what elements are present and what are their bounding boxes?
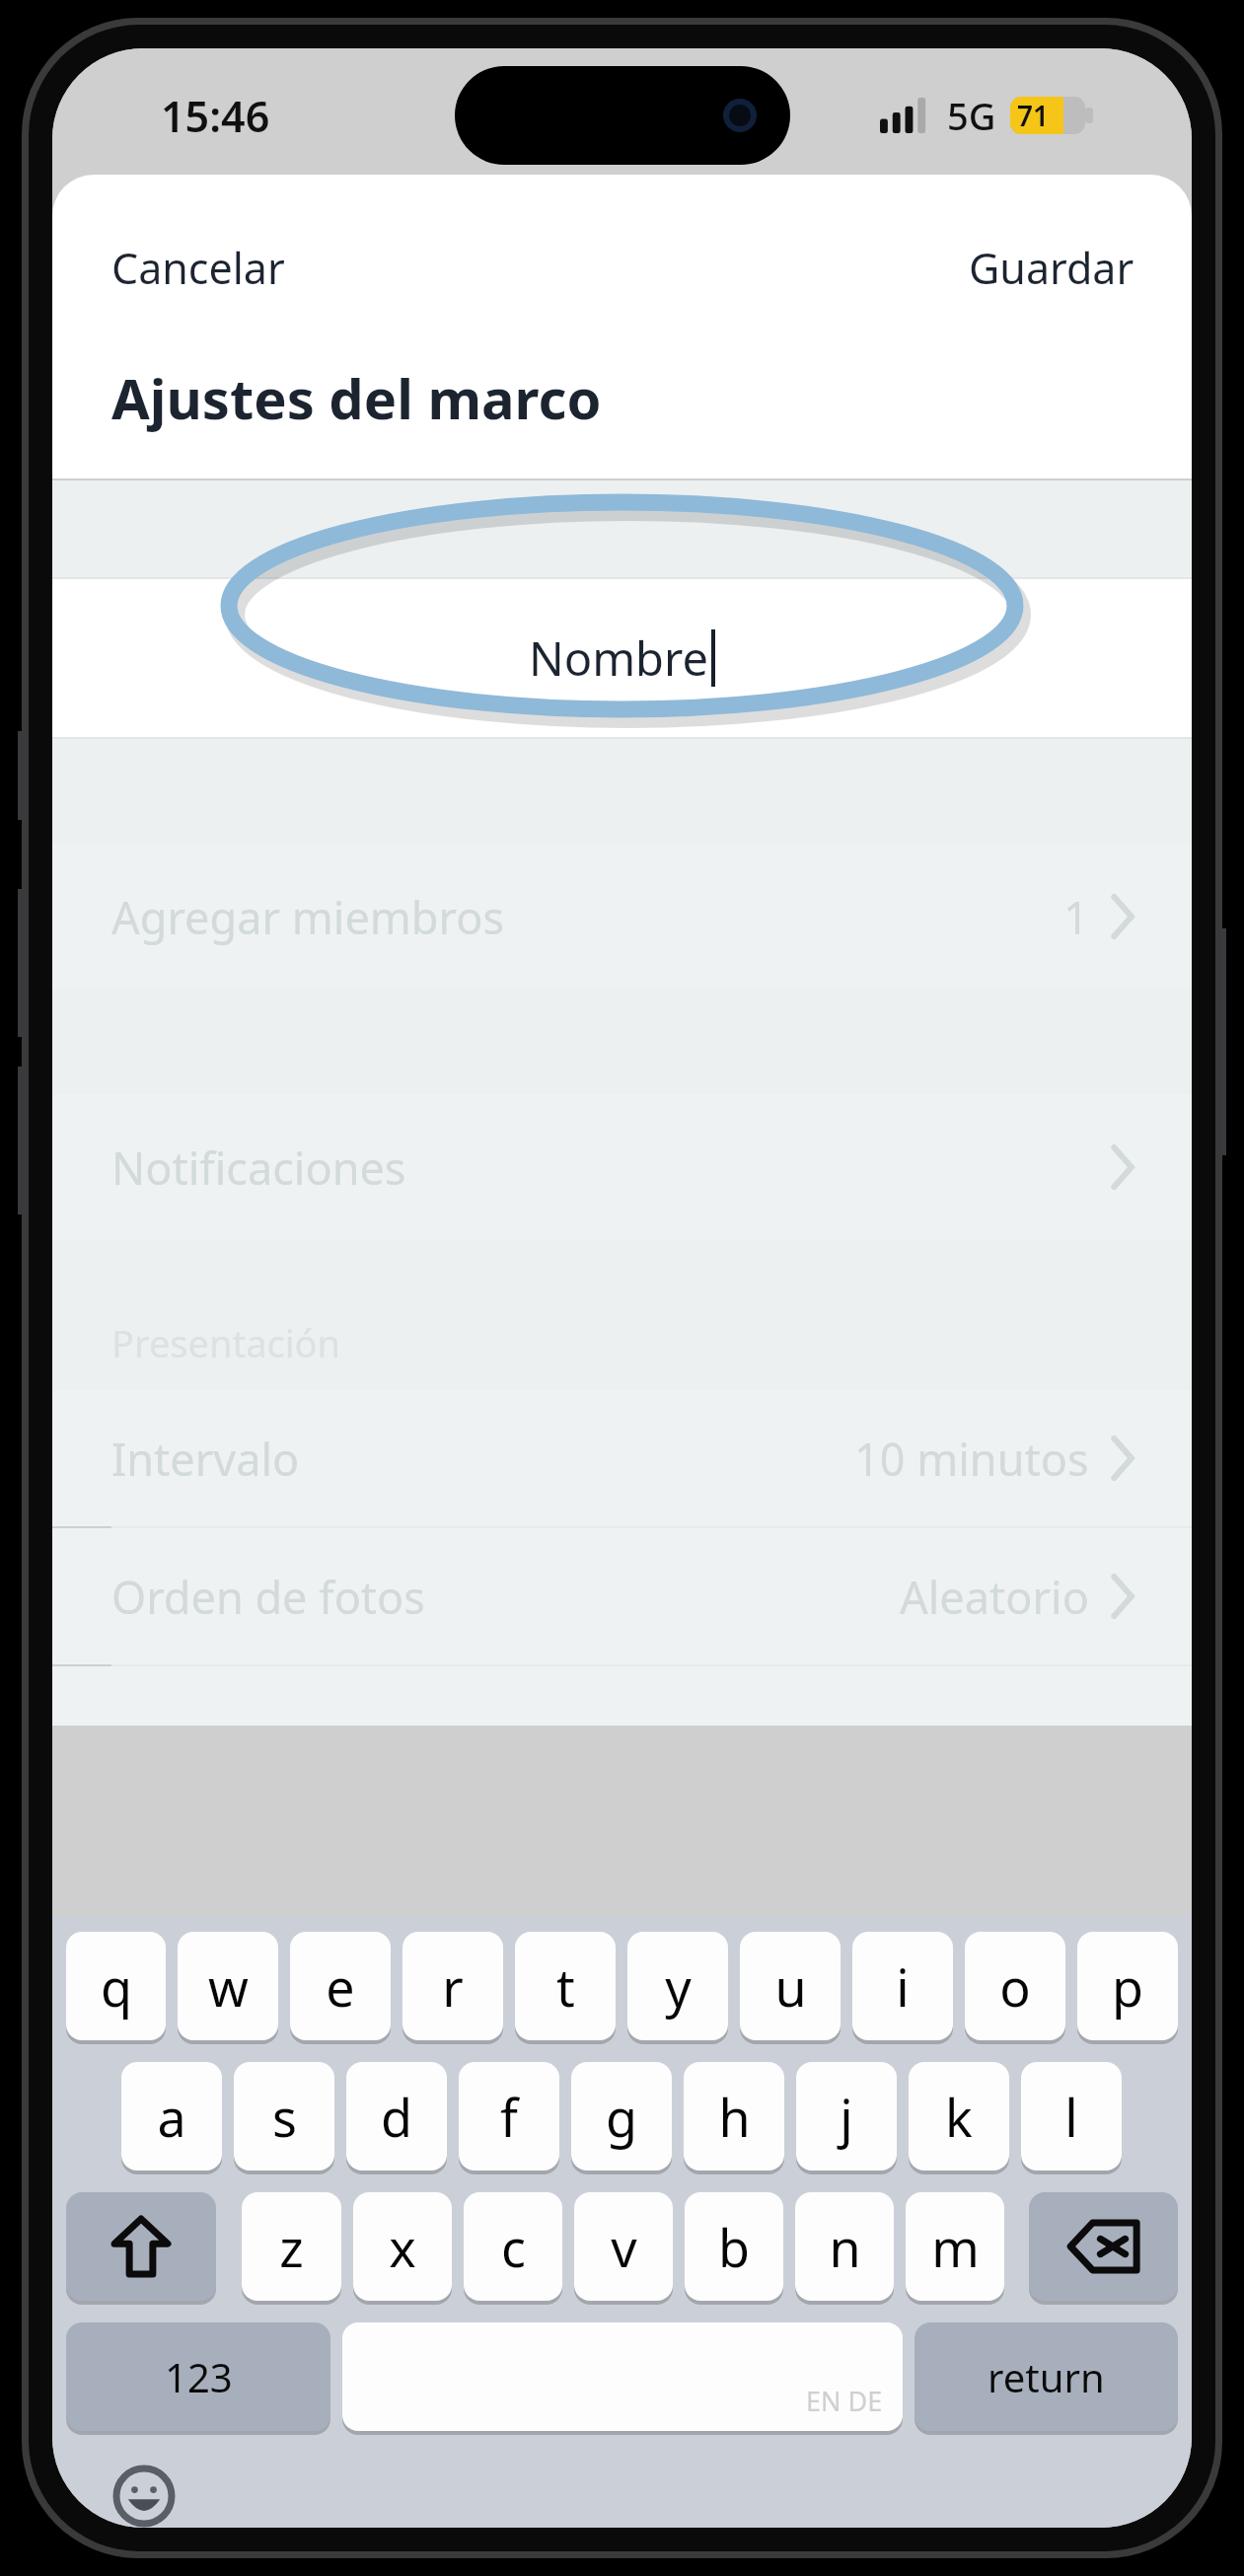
staticText: Nombre — [529, 626, 708, 690]
staticText: return — [988, 2350, 1105, 2403]
staticText: h — [718, 2082, 751, 2152]
staticText: Notificaciones — [111, 1138, 406, 1198]
staticText: b — [718, 2212, 750, 2282]
staticText: c — [501, 2212, 526, 2282]
staticText: k — [945, 2082, 973, 2152]
button[interactable]: i — [852, 1932, 953, 2040]
button[interactable]: Intervalo — [52, 1390, 1192, 1526]
button[interactable]: v — [574, 2192, 673, 2301]
button[interactable]: Agregar miembros — [52, 844, 1192, 990]
button[interactable]: n — [795, 2192, 894, 2301]
staticText: p — [1112, 1951, 1143, 2022]
staticText: 123 — [165, 2350, 233, 2403]
button[interactable]: g — [571, 2062, 672, 2171]
staticText: a — [157, 2082, 186, 2152]
staticText: d — [381, 2082, 412, 2152]
staticText: x — [389, 2212, 416, 2282]
staticText: o — [999, 1951, 1031, 2022]
staticText: t — [556, 1951, 575, 2022]
staticText: 15:46 — [161, 87, 270, 145]
staticText: m — [931, 2212, 980, 2282]
staticText: EN DE — [806, 2383, 883, 2419]
button[interactable]: w — [178, 1932, 278, 2040]
staticText: Presentación — [111, 1317, 341, 1368]
staticText: r — [442, 1951, 464, 2022]
staticText: 10 minutos — [854, 1429, 1089, 1489]
staticText: 5G — [947, 90, 996, 141]
button[interactable]: q — [66, 1932, 166, 2040]
staticText: l — [1064, 2082, 1078, 2152]
button[interactable]: Emoji keyboard — [106, 2465, 183, 2528]
button[interactable]: d — [346, 2062, 447, 2171]
button[interactable]: e — [290, 1932, 391, 2040]
button[interactable]: Nombre — [52, 579, 1192, 737]
button[interactable]: b — [685, 2192, 783, 2301]
button[interactable]: return — [915, 2322, 1178, 2431]
button[interactable]: Space — [342, 2322, 903, 2431]
staticText: Ajustes del marco — [111, 360, 602, 435]
button[interactable]: r — [402, 1932, 503, 2040]
button[interactable]: x — [353, 2192, 452, 2301]
staticText: 1 — [1063, 887, 1089, 947]
button[interactable]: j — [796, 2062, 897, 2171]
staticText: Agregar miembros — [111, 887, 504, 947]
staticText: Cancelar — [111, 239, 285, 297]
button[interactable]: c — [464, 2192, 562, 2301]
button[interactable]: a — [121, 2062, 222, 2171]
button[interactable]: f — [459, 2062, 559, 2171]
button[interactable]: o — [965, 1932, 1065, 2040]
button[interactable]: 123 — [66, 2322, 330, 2431]
button[interactable]: z — [242, 2192, 341, 2301]
staticText: Orden de fotos — [111, 1567, 425, 1627]
staticText: Intervalo — [111, 1429, 300, 1489]
staticText: e — [326, 1951, 355, 2022]
staticText: u — [774, 1951, 807, 2022]
button[interactable]: u — [740, 1932, 841, 2040]
staticText: 71 — [1017, 97, 1050, 134]
staticText: s — [272, 2082, 297, 2152]
staticText: v — [611, 2212, 637, 2282]
button[interactable]: Backspace — [1029, 2192, 1178, 2301]
staticText: n — [829, 2212, 861, 2282]
button[interactable]: Notificaciones — [52, 1094, 1192, 1240]
button[interactable]: t — [515, 1932, 616, 2040]
staticText: y — [665, 1951, 692, 2022]
button[interactable]: p — [1077, 1932, 1178, 2040]
button[interactable]: y — [627, 1932, 728, 2040]
button[interactable]: s — [234, 2062, 334, 2171]
button[interactable]: Guardar — [912, 217, 1192, 319]
staticText: z — [279, 2212, 304, 2282]
staticText: i — [896, 1951, 910, 2022]
button[interactable]: l — [1021, 2062, 1122, 2171]
staticText: f — [500, 2082, 518, 2152]
staticText: j — [840, 2082, 853, 2152]
button[interactable]: h — [684, 2062, 784, 2171]
staticText: Guardar — [969, 239, 1134, 297]
button[interactable]: Shift — [66, 2192, 216, 2301]
button[interactable]: m — [906, 2192, 1004, 2301]
staticText: Aleatorio — [900, 1567, 1089, 1627]
staticText: q — [101, 1951, 132, 2022]
staticText: w — [208, 1951, 249, 2022]
button[interactable]: k — [909, 2062, 1009, 2171]
button[interactable]: Cancelar — [52, 217, 344, 319]
button[interactable]: Orden de fotos — [52, 1528, 1192, 1664]
staticText: g — [606, 2082, 637, 2152]
